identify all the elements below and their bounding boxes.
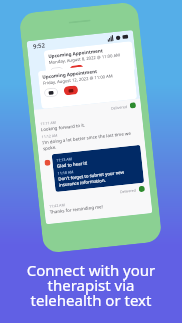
staticText: Upcoming Appointment [48,47,103,59]
staticText: I'm doing a lot better since the last ti… [42,129,140,151]
button[interactable]: Upcoming Appointment [44,41,135,80]
staticText: 11:13 AM [56,156,72,163]
button[interactable]: Join video call [63,85,78,95]
staticText: Don't forget to submit your new insuranc… [58,167,140,188]
staticText: Connect with your therapist via teleheal… [0,260,182,310]
button[interactable]: Join video call [69,64,84,75]
button[interactable]: Upcoming Appointment [38,61,137,109]
staticText: Friday, August 12, 2022 @ 11:00 AM [43,73,113,87]
staticText: Upcoming Appointment [42,68,97,80]
staticText: Thanks for reminding me! [49,203,104,215]
button[interactable]: Send message [49,66,64,77]
staticText: Delivered [120,187,137,194]
staticText: Looking forward to it. [41,121,86,132]
staticText: Glad to hear it! [57,159,88,169]
staticText: 11:42 AM [49,202,65,209]
staticText: 11:12 AM [41,133,58,139]
staticText: 11:18 AM [57,169,74,176]
staticText: Monday, August 8, 2022 @ 11:00 AM [49,52,121,66]
button[interactable]: Send message [44,87,58,98]
staticText: Delivered [111,104,128,111]
staticText: 11:11 AM [40,120,56,126]
staticText: 9:52 [33,41,45,51]
